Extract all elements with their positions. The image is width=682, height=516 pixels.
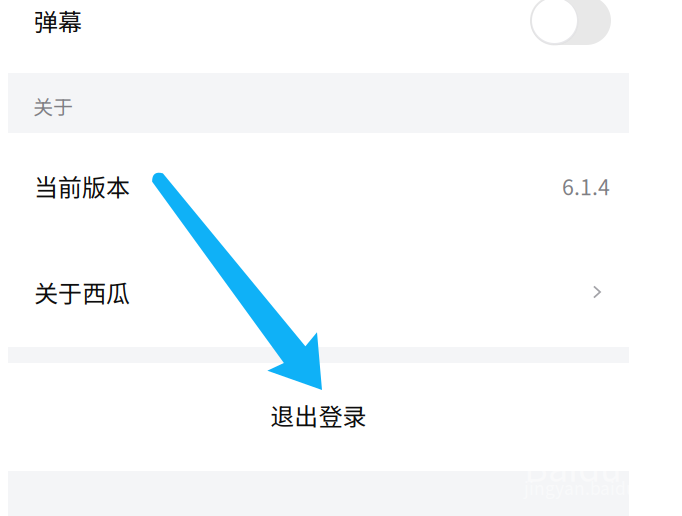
button[interactable]: 弹幕 bbox=[8, 0, 629, 73]
button[interactable]: 当前版本 bbox=[8, 133, 629, 239]
staticText: 关于西瓜 bbox=[34, 275, 130, 309]
staticText: 弹幕 bbox=[34, 3, 82, 38]
button[interactable]: 退出登录 bbox=[8, 361, 629, 469]
button[interactable]: 关于西瓜 bbox=[8, 239, 629, 345]
button[interactable]: 弹幕 switch, off bbox=[530, 0, 611, 45]
staticText: 当前版本 bbox=[34, 169, 130, 203]
staticText: 6.1.4 bbox=[562, 171, 610, 201]
staticText: 关于 bbox=[33, 91, 73, 120]
staticText: Baidu 经验 bbox=[524, 440, 682, 492]
staticText: 退出登录 bbox=[270, 398, 366, 432]
staticText: jingyan.baidu.com bbox=[524, 475, 677, 500]
